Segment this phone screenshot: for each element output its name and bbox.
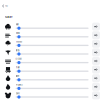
button[interactable]: Mute Fireplace <box>92 83 100 91</box>
staticText: Ocean <box>16 58 22 60</box>
button[interactable]: Mute Ocean <box>92 57 100 65</box>
staticText: Train <box>16 66 20 69</box>
button[interactable]: Mute Thunder <box>92 40 100 48</box>
staticText: River <box>16 75 20 77</box>
button[interactable]: Mute Cave <box>92 91 100 99</box>
staticText: Wind <box>16 32 20 34</box>
staticText: Rain <box>16 23 19 26</box>
button[interactable]: Mute Train <box>92 66 100 74</box>
staticText: Thunder <box>16 41 23 43</box>
staticText: Fireplace <box>16 84 23 86</box>
staticText: Birds <box>16 49 20 52</box>
staticText: Cave <box>16 92 20 95</box>
button[interactable]: Mute Wind <box>92 31 100 39</box>
staticText: Nature <box>5 16 12 19</box>
button[interactable]: Mute Rain <box>92 23 100 31</box>
button[interactable]: Help <box>0 4 8 8</box>
button[interactable]: Mute Birds <box>92 48 100 56</box>
button[interactable]: Mute River <box>92 74 100 82</box>
staticText: Help <box>5 5 8 7</box>
